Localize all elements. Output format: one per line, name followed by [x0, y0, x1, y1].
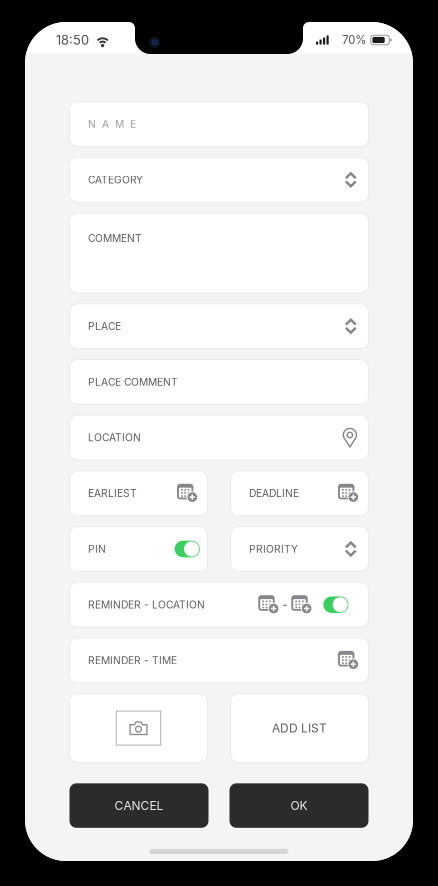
staticText: DEADLINE: [249, 487, 299, 499]
staticText: 70%: [342, 33, 366, 47]
button[interactable]: N A M E: [69, 102, 368, 147]
staticText: LOCATION: [88, 431, 141, 444]
staticText: PIN: [88, 543, 106, 555]
button[interactable]: Add photo: [69, 694, 207, 763]
button[interactable]: REMINDER - TIME: [69, 638, 368, 683]
button[interactable]: OK: [229, 783, 368, 828]
staticText: PRIORITY: [249, 543, 298, 555]
staticText: REMINDER - LOCATION: [88, 598, 205, 611]
button[interactable]: REMINDER - LOCATION: [69, 582, 368, 627]
staticText: PLACE: [88, 320, 121, 332]
staticText: OK: [290, 798, 307, 813]
staticText: COMMENT: [88, 232, 142, 244]
button[interactable]: CATEGORY: [69, 157, 368, 202]
staticText: CANCEL: [114, 798, 163, 813]
staticText: -: [282, 597, 288, 612]
button[interactable]: PLACE COMMENT: [69, 359, 368, 404]
staticText: PLACE COMMENT: [88, 376, 178, 388]
button[interactable]: LOCATION: [69, 415, 368, 460]
staticText: N A M E: [88, 118, 136, 130]
button[interactable]: DEADLINE: [230, 471, 368, 516]
button[interactable]: ADD LIST: [230, 694, 368, 763]
button[interactable]: PRIORITY: [230, 526, 368, 571]
button[interactable]: EARLIEST: [69, 471, 207, 516]
button[interactable]: CANCEL: [69, 783, 208, 828]
staticText: CATEGORY: [88, 174, 143, 186]
staticText: 18:50: [56, 32, 89, 48]
staticText: EARLIEST: [88, 487, 137, 499]
button[interactable]: PLACE: [69, 304, 368, 349]
staticText: ADD LIST: [272, 721, 327, 735]
button[interactable]: PIN: [69, 526, 207, 571]
button[interactable]: COMMENT: [69, 213, 368, 293]
staticText: REMINDER - TIME: [88, 654, 177, 667]
